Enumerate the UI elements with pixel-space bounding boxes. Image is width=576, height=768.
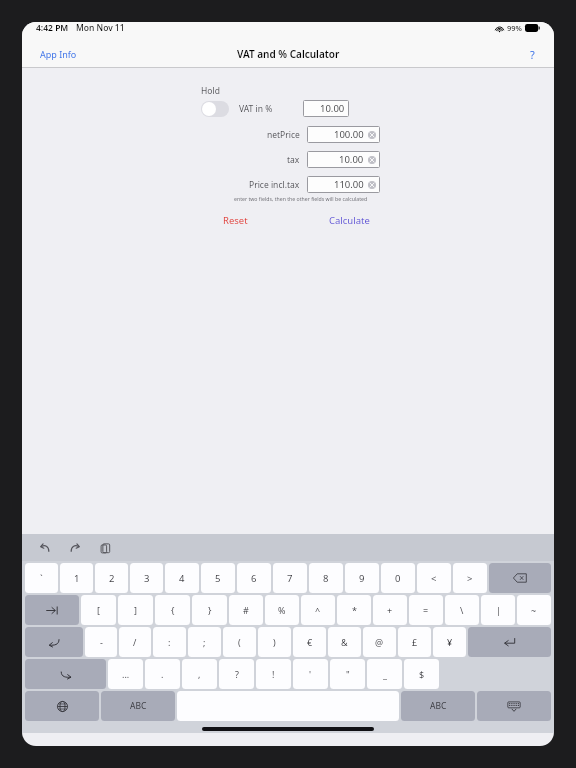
staticText: 7: [287, 572, 293, 585]
button[interactable]: Tab: [25, 595, 79, 625]
button[interactable]: 8: [309, 563, 343, 593]
button[interactable]: Calculate: [323, 211, 376, 230]
button[interactable]: Change keyboard: [25, 691, 99, 721]
button[interactable]: Caps lock: [25, 627, 83, 657]
button[interactable]: €: [293, 627, 326, 657]
button[interactable]: ^: [301, 595, 335, 625]
button[interactable]: >: [453, 563, 487, 593]
button[interactable]: ABC: [101, 691, 175, 721]
button[interactable]: =: [409, 595, 443, 625]
button[interactable]: /: [119, 627, 151, 657]
button[interactable]: `: [25, 563, 58, 593]
button[interactable]: ¥: [433, 627, 466, 657]
button[interactable]: ~: [517, 595, 551, 625]
button[interactable]: @: [363, 627, 396, 657]
button[interactable]: 7: [273, 563, 307, 593]
staticText: ]: [134, 604, 137, 616]
button[interactable]: ...: [108, 659, 143, 689]
button[interactable]: Reset: [217, 211, 254, 230]
button[interactable]: Backspace: [489, 563, 551, 593]
staticText: ¥: [447, 636, 453, 648]
button[interactable]: &: [328, 627, 361, 657]
staticText: @: [375, 636, 384, 648]
staticText: [: [97, 604, 100, 616]
staticText: ': [309, 668, 312, 680]
staticText: 99%: [507, 23, 522, 33]
staticText: `: [40, 572, 43, 585]
staticText: ...: [122, 668, 130, 680]
button[interactable]: _: [367, 659, 402, 689]
button[interactable]: !: [256, 659, 291, 689]
staticText: 100.00: [334, 128, 364, 141]
button[interactable]: 10.00: [303, 100, 349, 117]
button[interactable]: Hide keyboard: [477, 691, 551, 721]
staticText: -: [100, 636, 103, 648]
button[interactable]: Redo: [66, 539, 84, 557]
staticText: 2: [109, 572, 115, 585]
button[interactable]: 1: [60, 563, 93, 593]
staticText: &: [341, 636, 348, 648]
staticText: <: [431, 572, 437, 585]
staticText: 4: [179, 572, 185, 585]
button[interactable]: App Info: [36, 44, 81, 64]
button[interactable]: .: [145, 659, 180, 689]
button[interactable]: Return: [468, 627, 551, 657]
staticText: 3: [144, 572, 150, 585]
button[interactable]: Hold toggle: [201, 101, 229, 117]
staticText: ~: [531, 604, 537, 616]
button[interactable]: Paste: [96, 539, 114, 557]
staticText: ": [346, 668, 350, 680]
button[interactable]: 9: [345, 563, 379, 593]
button[interactable]: [: [81, 595, 116, 625]
staticText: (: [238, 636, 241, 648]
button[interactable]: (: [223, 627, 256, 657]
button[interactable]: $: [404, 659, 439, 689]
button[interactable]: ?: [219, 659, 254, 689]
button[interactable]: Undo: [36, 539, 54, 557]
staticText: VAT in %: [239, 103, 273, 115]
button[interactable]: }: [192, 595, 227, 625]
staticText: %: [278, 604, 286, 616]
button[interactable]: £: [398, 627, 431, 657]
button[interactable]: #: [229, 595, 263, 625]
button[interactable]: 6: [237, 563, 271, 593]
button[interactable]: -: [85, 627, 117, 657]
button[interactable]: +: [373, 595, 407, 625]
button[interactable]: ': [293, 659, 328, 689]
button[interactable]: ": [330, 659, 365, 689]
staticText: *: [352, 604, 357, 616]
staticText: 4:42 PM: [36, 22, 69, 34]
staticText: ): [273, 636, 276, 648]
staticText: Calculate: [329, 214, 370, 227]
button[interactable]: ): [258, 627, 291, 657]
button[interactable]: ,: [182, 659, 217, 689]
button[interactable]: Help: [525, 44, 540, 65]
staticText: 110.00: [334, 178, 364, 191]
button[interactable]: 10.00: [307, 151, 380, 168]
button[interactable]: 2: [95, 563, 128, 593]
button[interactable]: 0: [381, 563, 415, 593]
button[interactable]: \: [445, 595, 479, 625]
button[interactable]: 110.00: [307, 176, 380, 193]
staticText: ABC: [130, 700, 147, 712]
button[interactable]: 3: [130, 563, 163, 593]
button[interactable]: {: [155, 595, 190, 625]
button[interactable]: 5: [201, 563, 235, 593]
button[interactable]: :: [153, 627, 186, 657]
button[interactable]: ;: [188, 627, 221, 657]
button[interactable]: *: [337, 595, 371, 625]
staticText: ,: [198, 668, 201, 680]
staticText: +: [387, 604, 393, 616]
staticText: |: [496, 604, 501, 616]
button[interactable]: 4: [165, 563, 199, 593]
button[interactable]: ]: [118, 595, 153, 625]
button[interactable]: %: [265, 595, 299, 625]
staticText: #: [243, 604, 249, 616]
button[interactable]: ABC: [401, 691, 475, 721]
staticText: tax: [287, 154, 300, 166]
button[interactable]: 100.00: [307, 126, 380, 143]
button[interactable]: <: [417, 563, 451, 593]
button[interactable]: Shift: [25, 659, 106, 689]
button[interactable]: |: [481, 595, 515, 625]
